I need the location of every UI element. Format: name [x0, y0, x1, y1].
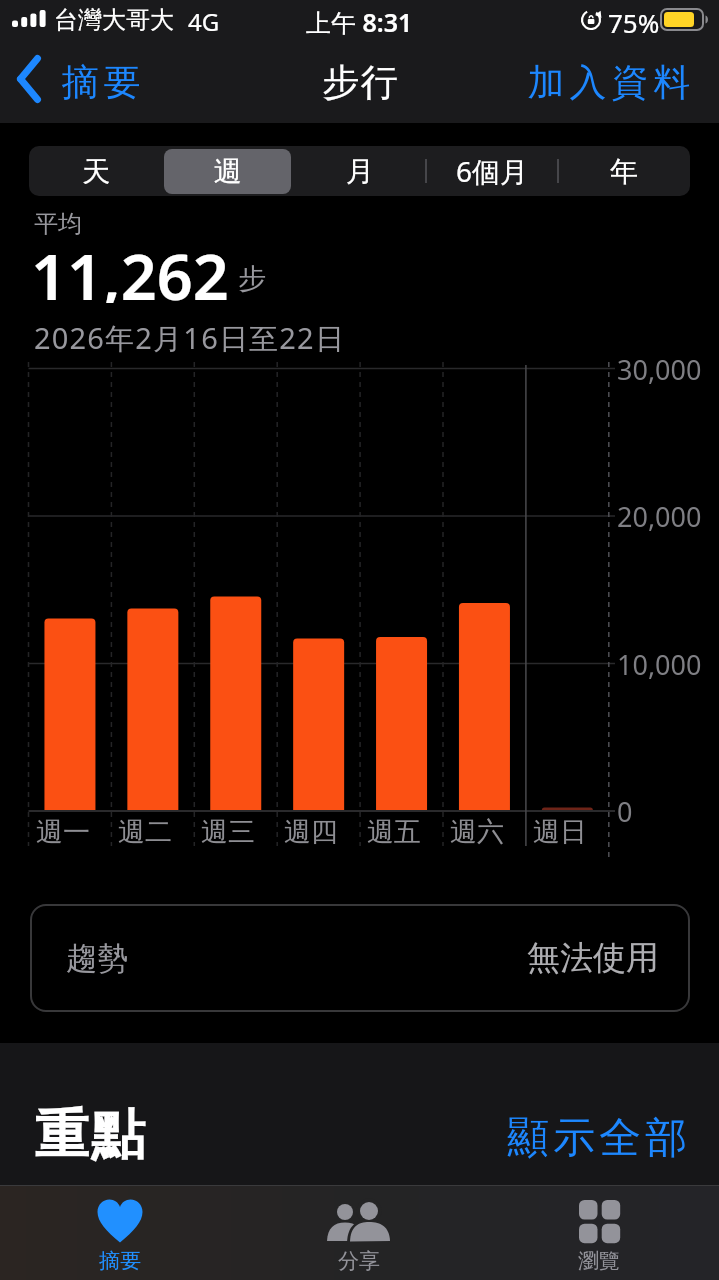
staticText: 重點 — [34, 1101, 146, 1169]
staticText: 分享 — [338, 1248, 380, 1274]
staticText: 週日 — [533, 815, 587, 849]
staticText: 無法使用 — [527, 937, 659, 979]
staticText: 顯示全部 — [505, 1112, 689, 1165]
button[interactable]: 瀏覽 — [519, 1186, 679, 1280]
staticText: 摘要 — [59, 59, 143, 106]
button[interactable]: 分享 — [279, 1186, 439, 1280]
button[interactable]: 加入資料 — [490, 42, 719, 123]
staticText: 4G — [188, 5, 220, 35]
button[interactable]: 年 — [558, 146, 690, 196]
staticText: 加入資料 — [525, 59, 693, 106]
staticText: 平均 — [34, 209, 82, 239]
staticText: 11,262 — [31, 233, 229, 303]
staticText: 趨勢 — [66, 939, 128, 978]
button[interactable]: 摘要 — [0, 42, 170, 123]
staticText: 瀏覽 — [578, 1248, 620, 1274]
button[interactable]: 月 — [294, 146, 426, 196]
staticText: 週一 — [36, 815, 90, 849]
staticText: 10,000 — [617, 646, 702, 683]
staticText: 20,000 — [617, 498, 702, 535]
staticText: 6個月 — [456, 152, 529, 190]
staticText: 步行 — [322, 59, 398, 106]
staticText: 月 — [346, 154, 374, 189]
staticText: 台灣大哥大 — [54, 5, 174, 35]
button[interactable]: 趨勢 — [30, 904, 690, 1012]
staticText: 週四 — [284, 815, 338, 849]
staticText: 年 — [610, 154, 638, 189]
staticText: 天 — [82, 154, 110, 189]
staticText: 0 — [617, 793, 633, 830]
staticText: 週六 — [450, 815, 504, 849]
button[interactable]: 6個月 — [426, 146, 558, 196]
staticText: 75% — [608, 5, 660, 35]
staticText: 週 — [214, 154, 242, 189]
button[interactable]: 摘要 — [40, 1186, 200, 1280]
staticText: 2026年2月16日至22日 — [34, 318, 346, 356]
staticText: 週五 — [367, 815, 421, 849]
button[interactable]: 顯示全部 — [430, 1108, 719, 1168]
button[interactable]: 週 — [162, 146, 294, 196]
staticText: 週三 — [201, 815, 255, 849]
staticText: 30,000 — [617, 351, 702, 388]
staticText: 步 — [238, 261, 266, 296]
staticText: 週二 — [118, 815, 172, 849]
staticText: 摘要 — [99, 1248, 141, 1274]
staticText: 上午 8:31 — [306, 5, 413, 35]
button[interactable]: 天 — [29, 146, 162, 196]
